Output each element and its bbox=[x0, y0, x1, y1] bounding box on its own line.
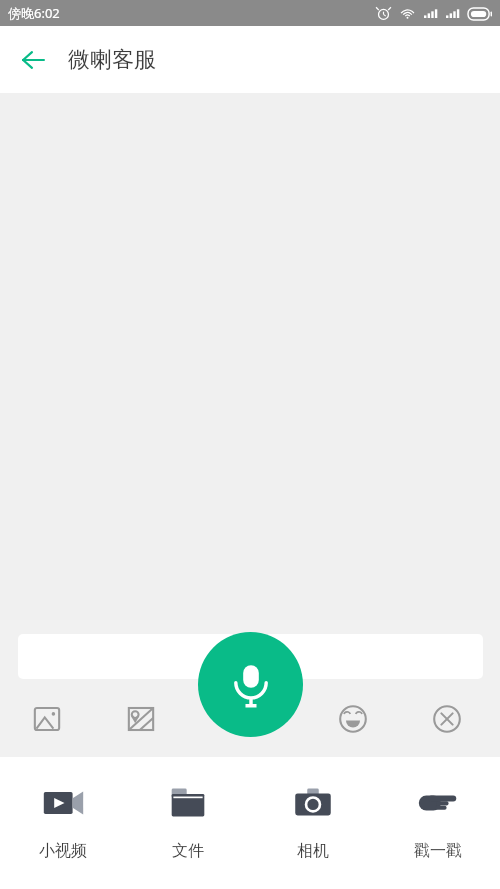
button[interactable]: Record voice bbox=[198, 632, 303, 737]
staticText: 文件 bbox=[172, 841, 204, 861]
staticText: 小视频 bbox=[39, 841, 87, 861]
button[interactable]: 戳一戳 bbox=[375, 757, 500, 889]
button[interactable]: 相机 bbox=[250, 757, 375, 889]
button[interactable]: Close bbox=[400, 696, 494, 742]
button[interactable] bbox=[18, 634, 483, 679]
staticText: 戳一戳 bbox=[414, 841, 462, 861]
button[interactable]: Emoji bbox=[306, 696, 400, 742]
staticText: 相机 bbox=[297, 841, 329, 861]
button[interactable]: 文件 bbox=[125, 757, 250, 889]
button[interactable]: Location bbox=[94, 696, 188, 742]
staticText: 傍晚6:02 bbox=[8, 4, 60, 22]
staticText: 微喇客服 bbox=[68, 46, 156, 74]
button[interactable]: Photo bbox=[0, 696, 94, 742]
button[interactable]: 小视频 bbox=[0, 757, 125, 889]
button[interactable]: Back bbox=[10, 37, 56, 83]
